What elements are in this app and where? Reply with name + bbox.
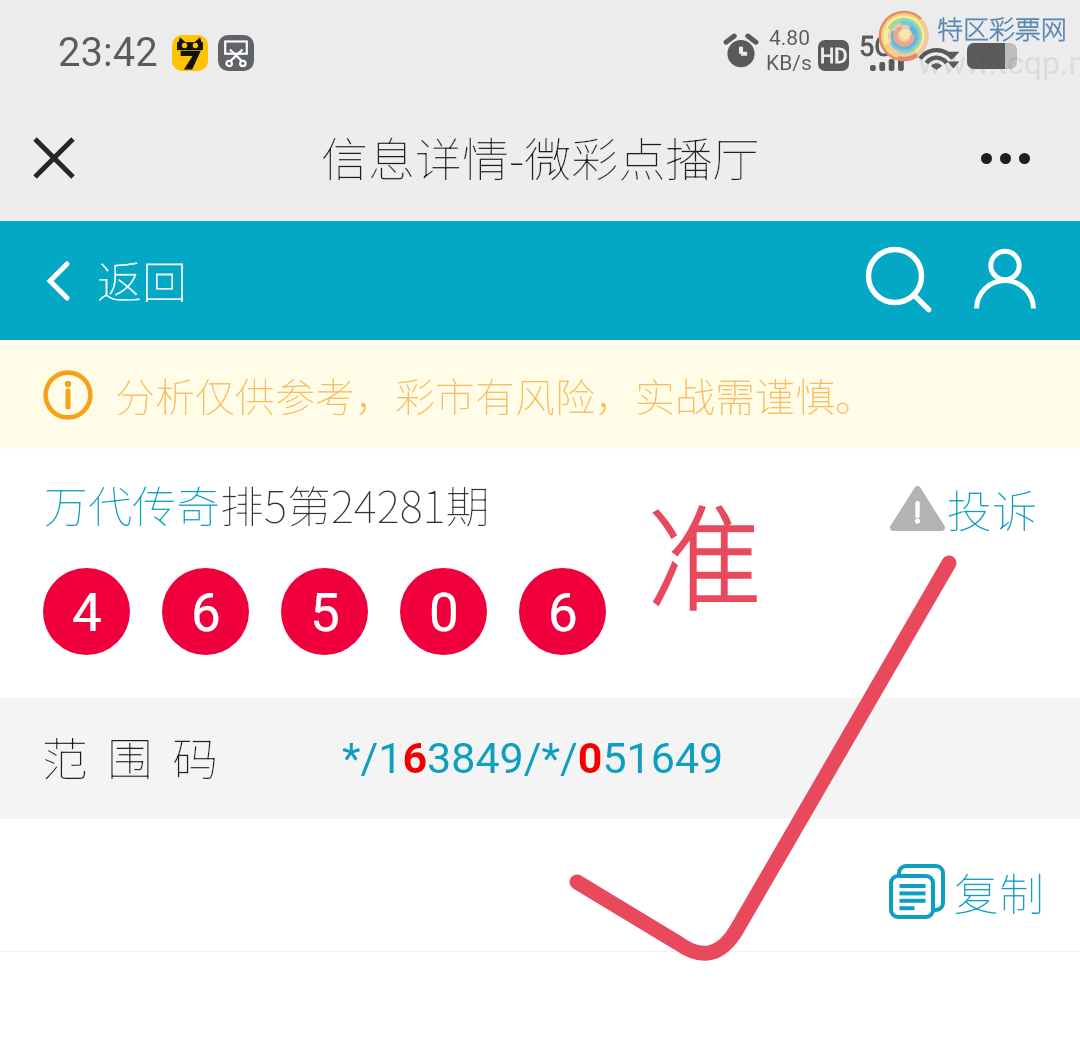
staticText: 范 — [42, 723, 88, 790]
staticText: */163849/*/051649 — [342, 733, 724, 783]
button[interactable]: 返回 — [40, 238, 196, 323]
staticText: 返回 — [97, 247, 188, 312]
staticText: 5G — [859, 31, 893, 63]
button[interactable]: 复制 — [891, 859, 1045, 924]
staticText: 码 — [172, 723, 218, 790]
staticText: 6 — [548, 582, 578, 644]
staticText: KB/s — [766, 51, 812, 76]
staticText: 4 — [72, 582, 102, 644]
staticText: 4.80 — [769, 26, 810, 51]
button[interactable]: Profile — [966, 241, 1046, 321]
button[interactable]: More options — [960, 124, 1050, 192]
staticText: 万代传奇排5第24281期 — [44, 472, 490, 536]
staticText: 6 — [191, 582, 221, 644]
staticText: 围 — [107, 723, 153, 790]
staticText: HD — [820, 44, 848, 67]
button[interactable]: Close — [20, 124, 88, 192]
staticText: 准 — [648, 469, 763, 634]
staticText: 5 — [310, 582, 340, 644]
staticText: 0 — [429, 582, 459, 644]
staticText: 特区彩票网 — [937, 9, 1068, 47]
button[interactable]: 投诉 — [890, 476, 1038, 541]
button[interactable]: Search — [855, 241, 935, 321]
staticText: 分析仅供参考，彩市有风险，实战需谨慎。 — [115, 366, 875, 424]
staticText: 信息详情-微彩点播厅 — [321, 122, 760, 190]
staticText: 23:42 — [58, 29, 158, 76]
staticText: 复制 — [954, 859, 1045, 924]
staticText: www.tcqp.net — [918, 44, 1080, 82]
staticText: 投诉 — [947, 476, 1038, 541]
